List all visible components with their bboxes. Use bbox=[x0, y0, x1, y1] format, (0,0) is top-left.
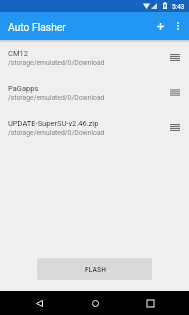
button[interactable]: Reorder bbox=[166, 48, 184, 66]
button[interactable]: Reorder bbox=[166, 83, 184, 101]
button[interactable]: PaGapps bbox=[0, 78, 189, 113]
button[interactable]: More options bbox=[169, 17, 187, 35]
staticText: Auto Flasher bbox=[8, 21, 66, 33]
button[interactable]: Home bbox=[84, 292, 106, 314]
staticText: /storage/emulated/0/Download bbox=[8, 94, 105, 102]
staticText: 5:43 bbox=[172, 3, 185, 11]
button[interactable]: Reorder bbox=[166, 118, 184, 136]
button[interactable]: FLASH bbox=[37, 258, 152, 280]
button[interactable]: CM12 bbox=[0, 43, 189, 78]
staticText: PaGapps bbox=[8, 84, 39, 93]
button[interactable]: Add bbox=[151, 17, 169, 35]
button[interactable]: Back bbox=[28, 292, 50, 314]
staticText: FLASH bbox=[85, 266, 107, 274]
staticText: /storage/emulated/0/Download bbox=[8, 59, 105, 67]
staticText: UPDATE-SuperSU-v2.46.zip bbox=[8, 119, 99, 128]
staticText: /storage/emulated/0/Download bbox=[8, 129, 105, 137]
button[interactable]: UPDATE-SuperSU-v2.46.zip bbox=[0, 113, 189, 148]
staticText: CM12 bbox=[8, 49, 28, 58]
button[interactable]: Recents bbox=[139, 292, 161, 314]
